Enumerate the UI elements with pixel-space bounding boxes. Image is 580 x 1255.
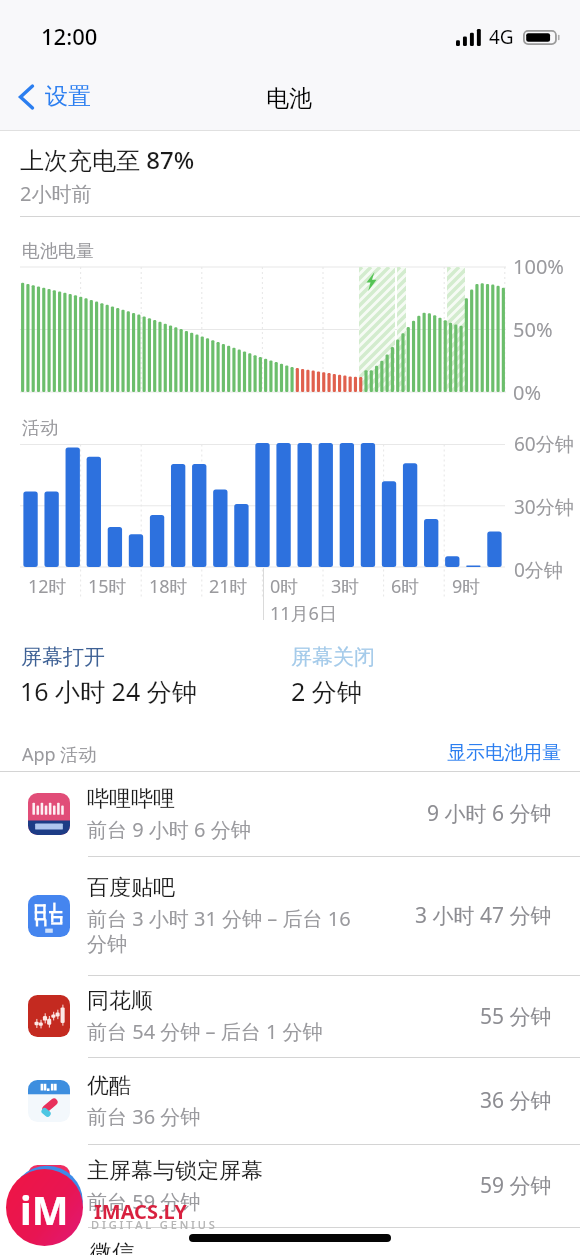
button[interactable]: 返回 设置: [10, 77, 100, 116]
staticText: 30分钟: [514, 494, 574, 520]
staticText: 微信: [90, 1239, 134, 1255]
staticText: 12:00: [41, 21, 98, 51]
staticText: 2小时前: [20, 180, 92, 207]
staticText: 60分钟: [514, 431, 574, 457]
button[interactable]: 优酷: [0, 1057, 580, 1144]
staticText: 屏幕关闭: [291, 644, 375, 670]
staticText: 0时: [270, 574, 299, 599]
staticText: 前台 59 分钟: [87, 1188, 201, 1215]
staticText: 3时: [331, 574, 360, 599]
staticText: 优酷: [87, 1072, 131, 1100]
staticText: 59 分钟: [480, 1171, 552, 1200]
staticText: 活动: [22, 417, 58, 440]
staticText: 12时: [28, 574, 67, 599]
button[interactable]: 同花顺: [0, 975, 580, 1057]
button[interactable]: 主屏幕与锁定屏幕: [0, 1144, 580, 1227]
staticText: IMACS.LY: [94, 1198, 187, 1225]
button[interactable]: 显示电池用量: [441, 737, 567, 769]
staticText: 100%: [513, 253, 564, 280]
staticText: 0%: [513, 379, 542, 406]
staticText: 前台 36 分钟: [87, 1103, 201, 1130]
staticText: 11月6日: [270, 601, 337, 626]
staticText: 18时: [149, 574, 188, 599]
staticText: 2 分钟: [291, 674, 362, 708]
staticText: 前台 9 小时 6 分钟: [87, 816, 251, 843]
staticText: 前台 3 小时 31 分钟 – 后台 16: [87, 905, 351, 932]
staticText: 15时: [88, 574, 127, 599]
staticText: 同花顺: [87, 987, 153, 1015]
staticText: 3 小时 47 分钟: [415, 901, 552, 930]
staticText: 前台 54 分钟 – 后台 1 分钟: [87, 1018, 323, 1045]
staticText: iM: [20, 1183, 69, 1236]
staticText: 0分钟: [514, 557, 563, 583]
button[interactable]: 哔哩哔哩: [0, 771, 580, 856]
staticText: 9时: [452, 574, 481, 599]
staticText: App 活动: [22, 742, 97, 767]
staticText: D I G I T A L G E N I U S: [91, 1217, 215, 1232]
staticText: 50%: [513, 316, 553, 343]
staticText: 21时: [209, 574, 248, 599]
staticText: 显示电池用量: [447, 741, 561, 765]
staticText: 哔哩哔哩: [87, 785, 175, 813]
staticText: 9 小时 6 分钟: [427, 799, 552, 828]
staticText: 分钟: [87, 932, 127, 957]
staticText: 屏幕打开: [21, 644, 105, 670]
staticText: 55 分钟: [480, 1002, 552, 1031]
staticText: 百度贴吧: [87, 874, 175, 902]
staticText: 电池电量: [22, 240, 94, 263]
staticText: 4G: [489, 24, 514, 50]
button[interactable]: 百度贴吧: [0, 856, 580, 975]
staticText: 6时: [391, 574, 420, 599]
staticText: 主屏幕与锁定屏幕: [87, 1157, 263, 1185]
button[interactable]: 微信: [0, 1228, 580, 1255]
staticText: 设置: [45, 82, 91, 111]
staticText: 16 小时 24 分钟: [20, 674, 197, 708]
staticText: 电池: [266, 84, 312, 113]
staticText: 36 分钟: [480, 1086, 552, 1115]
staticText: 上次充电至 87%: [20, 143, 195, 176]
